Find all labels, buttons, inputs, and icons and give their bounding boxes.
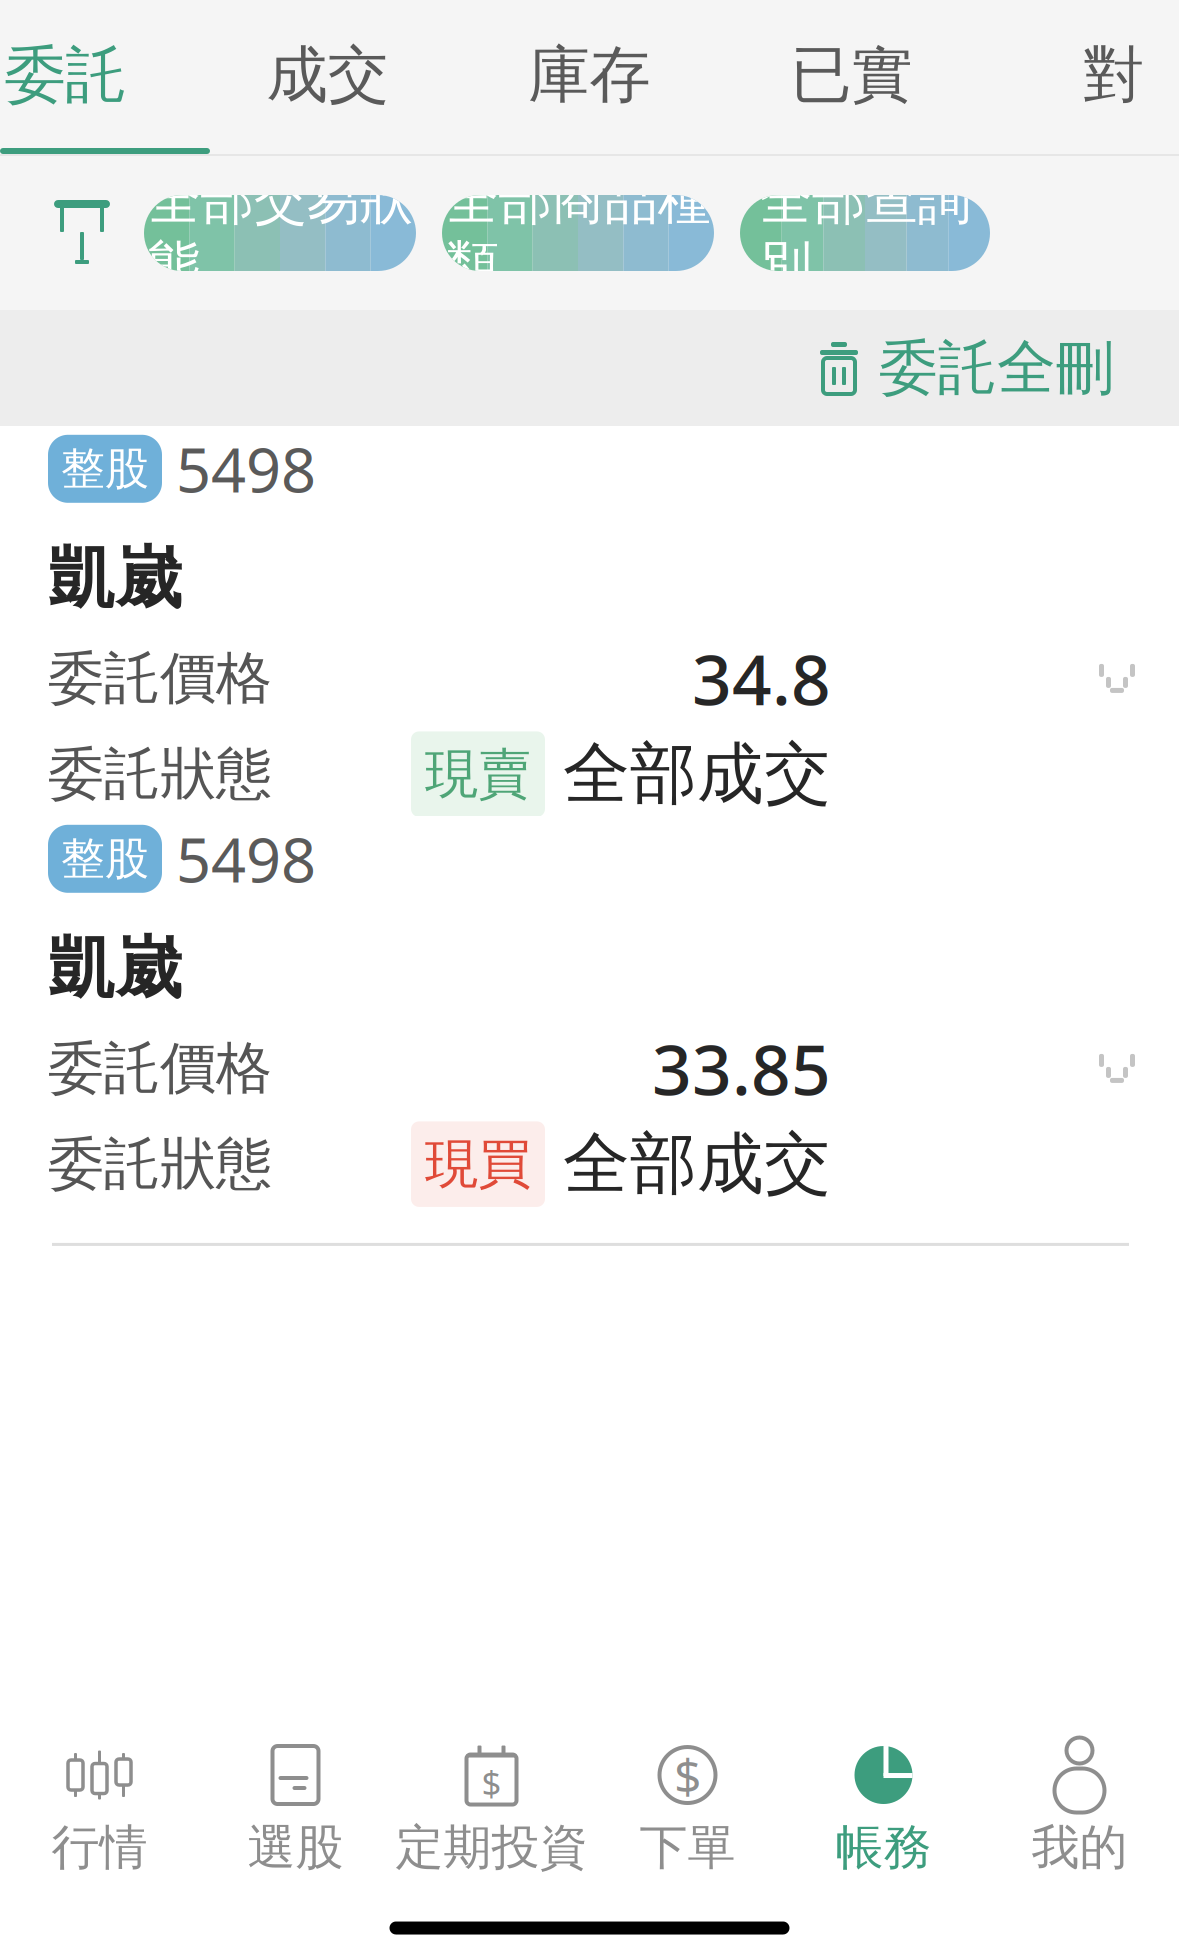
- staticText: 委託全刪: [879, 332, 1115, 404]
- button[interactable]: $: [589, 1735, 785, 1885]
- button[interactable]: 已實: [720, 40, 982, 110]
- button[interactable]: 全部交易狀態: [144, 195, 416, 271]
- button[interactable]: 全部查詢別: [740, 195, 990, 271]
- button[interactable]: 委託: [0, 40, 196, 110]
- button[interactable]: 整股: [0, 426, 1179, 816]
- staticText: 選股: [247, 1818, 343, 1877]
- button[interactable]: $: [393, 1735, 589, 1885]
- staticText: 33.85: [652, 1022, 831, 1114]
- button[interactable]: 庫存: [458, 40, 720, 110]
- staticText: $: [481, 1759, 501, 1805]
- staticText: $: [674, 1743, 701, 1807]
- staticText: 委託狀態: [48, 740, 272, 809]
- button[interactable]: 對: [982, 40, 1179, 110]
- staticText: 凱崴: [48, 537, 182, 619]
- staticText: 現買: [425, 1131, 531, 1197]
- button[interactable]: 帳務: [785, 1735, 981, 1885]
- staticText: 我的: [1031, 1818, 1127, 1877]
- staticText: 5498: [176, 428, 316, 509]
- button[interactable]: 整股: [0, 816, 1179, 1206]
- staticText: 已實: [790, 37, 912, 113]
- staticText: 成交: [266, 37, 388, 113]
- staticText: 行情: [51, 1818, 147, 1877]
- staticText: 全部商品種類: [445, 167, 710, 298]
- staticText: 帳務: [835, 1818, 931, 1877]
- staticText: 庫存: [528, 37, 650, 113]
- button[interactable]: 選股: [197, 1735, 393, 1885]
- staticText: 全部查詢別: [759, 167, 971, 298]
- button[interactable]: 篩選: [46, 195, 118, 271]
- staticText: 整股: [61, 832, 149, 886]
- staticText: 全部交易狀態: [147, 167, 412, 298]
- staticText: 凱崴: [48, 927, 182, 1009]
- button[interactable]: 全部商品種類: [442, 195, 714, 271]
- staticText: 全部成交: [563, 733, 831, 815]
- button[interactable]: 我的: [981, 1735, 1177, 1885]
- staticText: 5498: [176, 818, 316, 899]
- button[interactable]: 成交: [196, 40, 458, 110]
- staticText: 定期投資: [395, 1818, 587, 1877]
- staticText: 委託價格: [48, 1034, 272, 1103]
- staticText: 下單: [639, 1818, 735, 1877]
- staticText: 全部成交: [563, 1123, 831, 1205]
- staticText: 委託狀態: [48, 1130, 272, 1199]
- staticText: 委託: [4, 37, 126, 113]
- staticText: 委託價格: [48, 644, 272, 713]
- staticText: 現賣: [425, 741, 531, 807]
- staticText: 整股: [61, 442, 149, 496]
- button[interactable]: 委託全刪: [807, 318, 1125, 418]
- button[interactable]: 行情: [1, 1735, 197, 1885]
- staticText: 對: [1083, 37, 1144, 113]
- staticText: 34.8: [692, 632, 831, 724]
